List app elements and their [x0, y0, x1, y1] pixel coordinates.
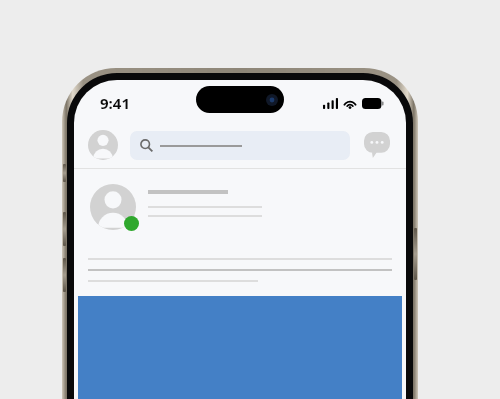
- button[interactable]: Profile: [88, 130, 118, 160]
- button[interactable]: [130, 131, 350, 160]
- button[interactable]: Messages: [362, 130, 392, 160]
- staticText: 9:41: [100, 93, 130, 113]
- button[interactable]: [74, 170, 406, 399]
